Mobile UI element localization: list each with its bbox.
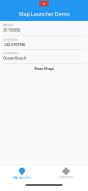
staticText: Map Launcher Demo	[18, 10, 69, 18]
staticText: Directions	[59, 175, 73, 179]
staticText: Show Maps	[34, 66, 54, 71]
staticText: -122.5107336	[3, 42, 25, 47]
staticText: Longitude	[3, 38, 18, 41]
staticText: ★	[42, 1, 46, 6]
button[interactable]: Show Maps	[3, 63, 85, 73]
staticText: Map Launcher	[13, 176, 31, 179]
button[interactable]: Directions	[44, 168, 88, 179]
staticText: Ocean Beach	[3, 55, 26, 60]
staticText: Latitude	[3, 23, 14, 27]
staticText: 37.759392	[3, 27, 20, 33]
button[interactable]: Map Launcher	[0, 167, 44, 179]
staticText: Description	[3, 51, 19, 55]
